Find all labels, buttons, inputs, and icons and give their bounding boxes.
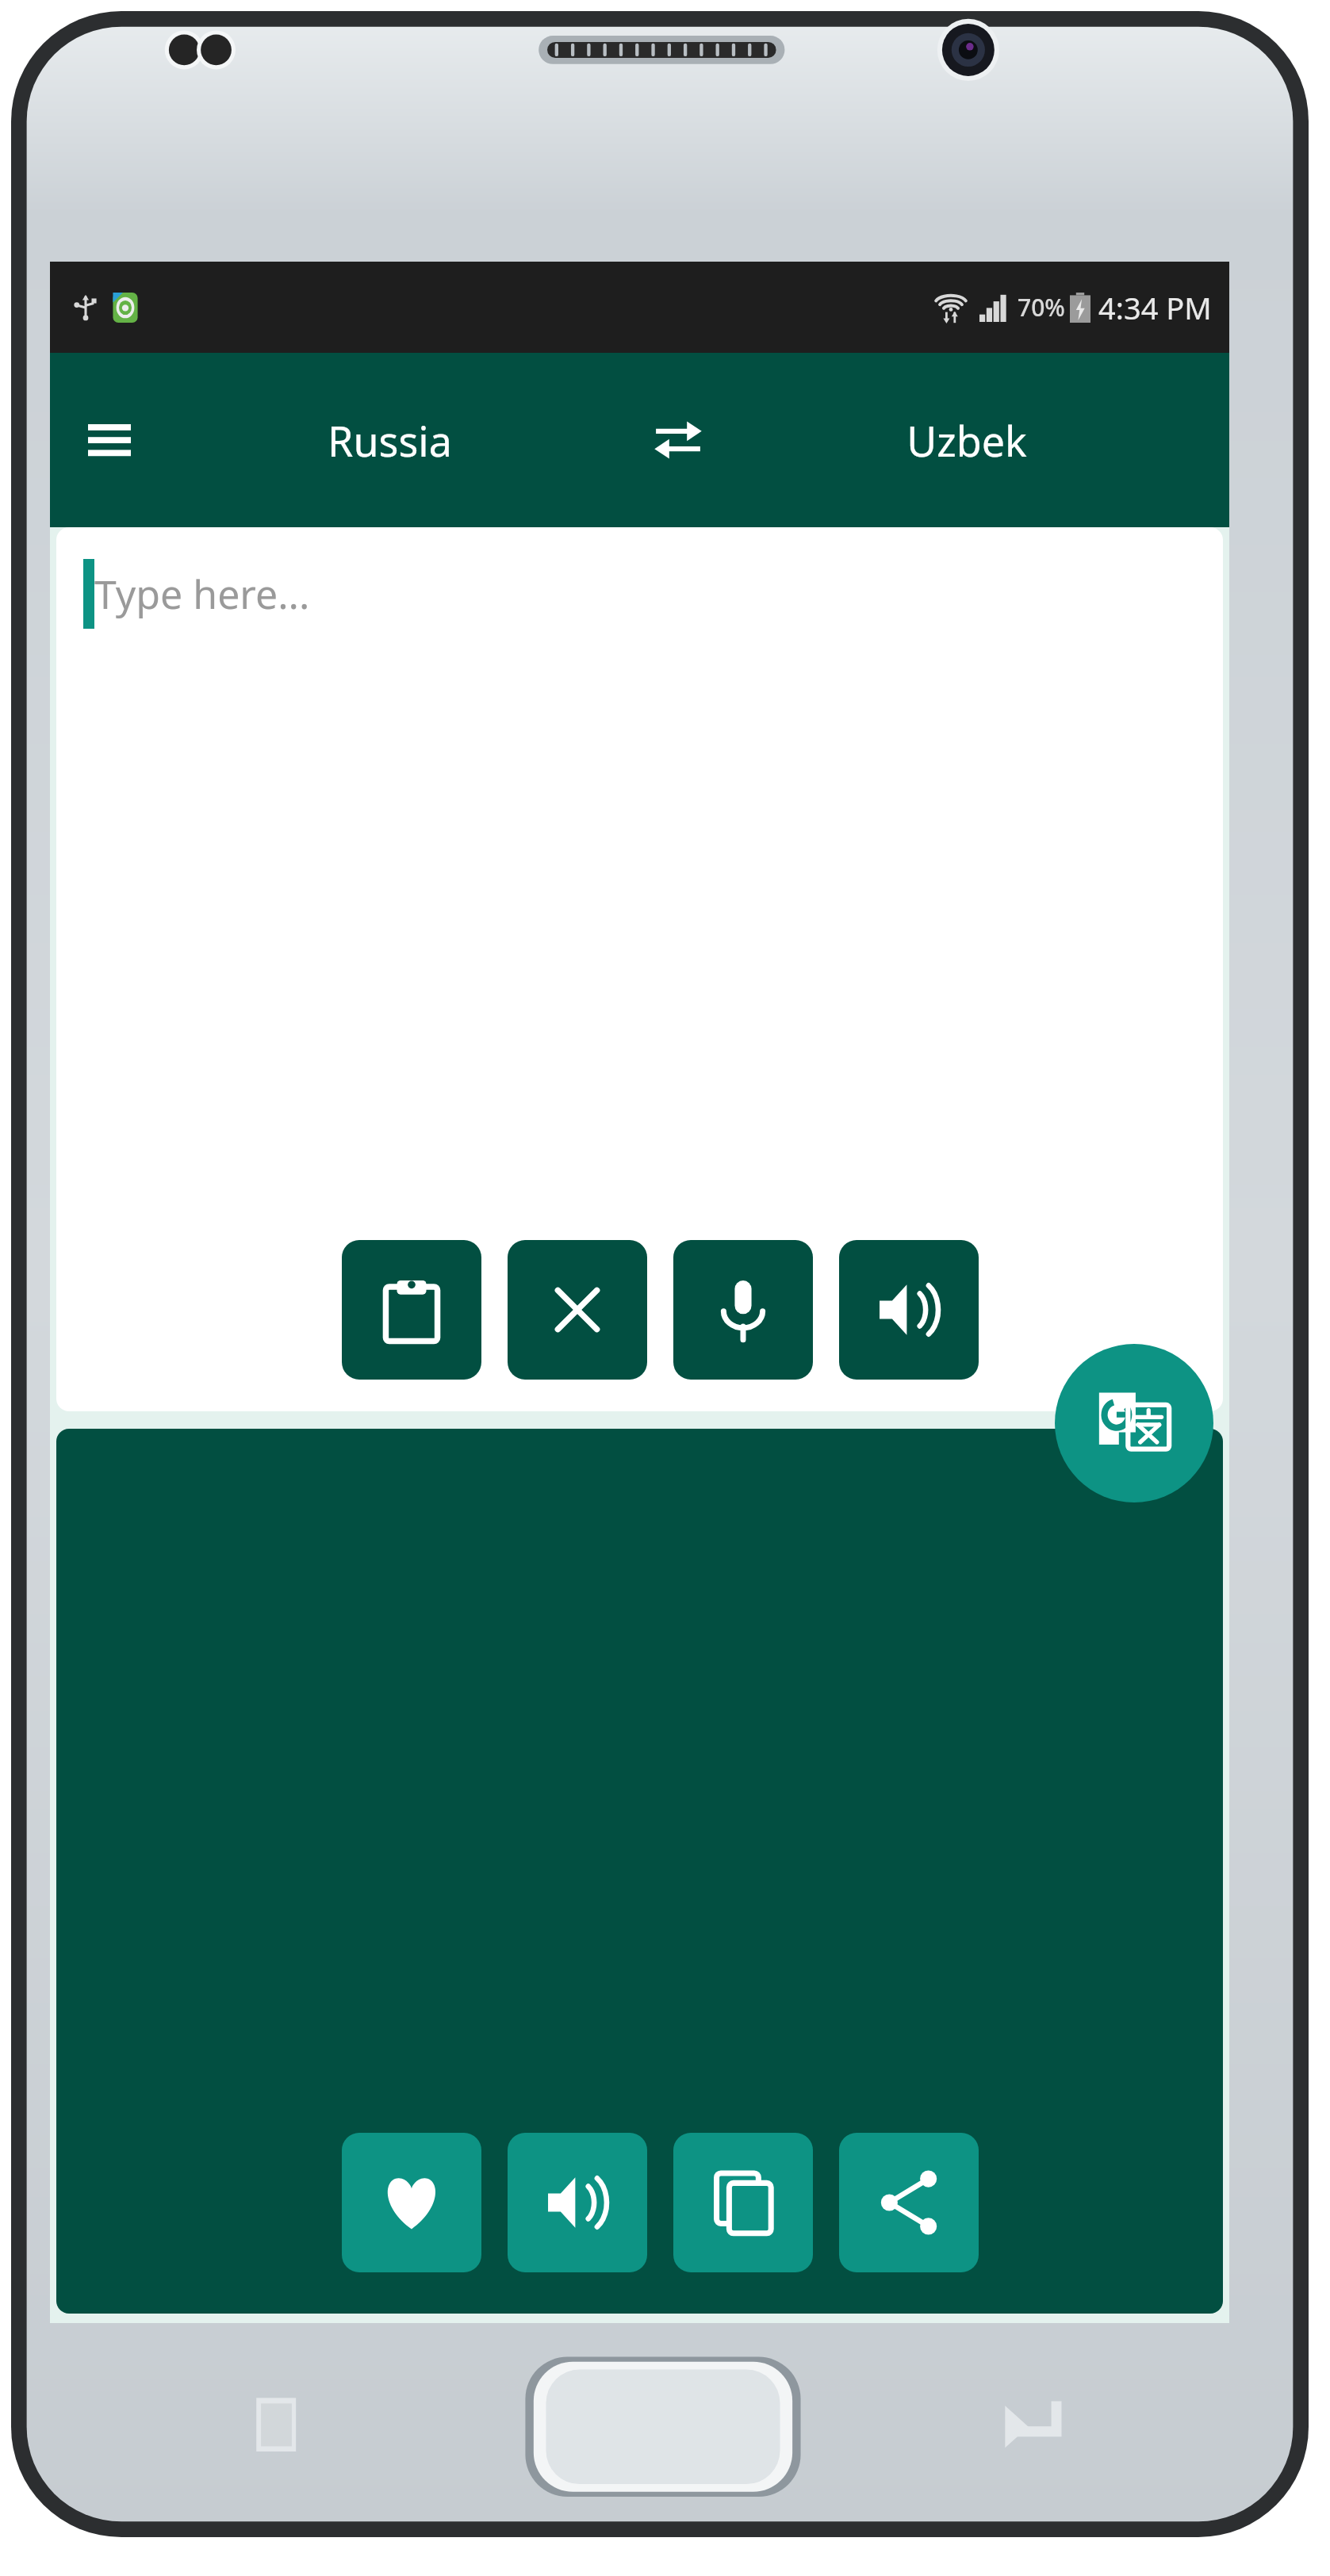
button[interactable]: Paste [342,1240,481,1380]
staticText: 4:34 PM [1098,287,1212,328]
button[interactable]: Menu [74,404,145,476]
button[interactable]: Favorite [342,2133,481,2272]
staticText: Russia [328,412,452,469]
button[interactable]: Speak [839,1240,979,1380]
button[interactable]: Copy [673,2133,813,2272]
button[interactable]: Speak [508,2133,647,2272]
staticText: Type here... [94,567,310,621]
button[interactable]: Uzbek [722,353,1212,527]
button[interactable]: Translate [1055,1344,1213,1502]
button[interactable]: Share [839,2133,979,2272]
button[interactable]: Clear [508,1240,647,1380]
staticText: Uzbek [906,412,1027,469]
button[interactable]: Swap languages [634,396,722,484]
staticText: 70% [1018,291,1065,323]
button[interactable]: Voice input [673,1240,813,1380]
button[interactable]: Russia [145,353,634,527]
